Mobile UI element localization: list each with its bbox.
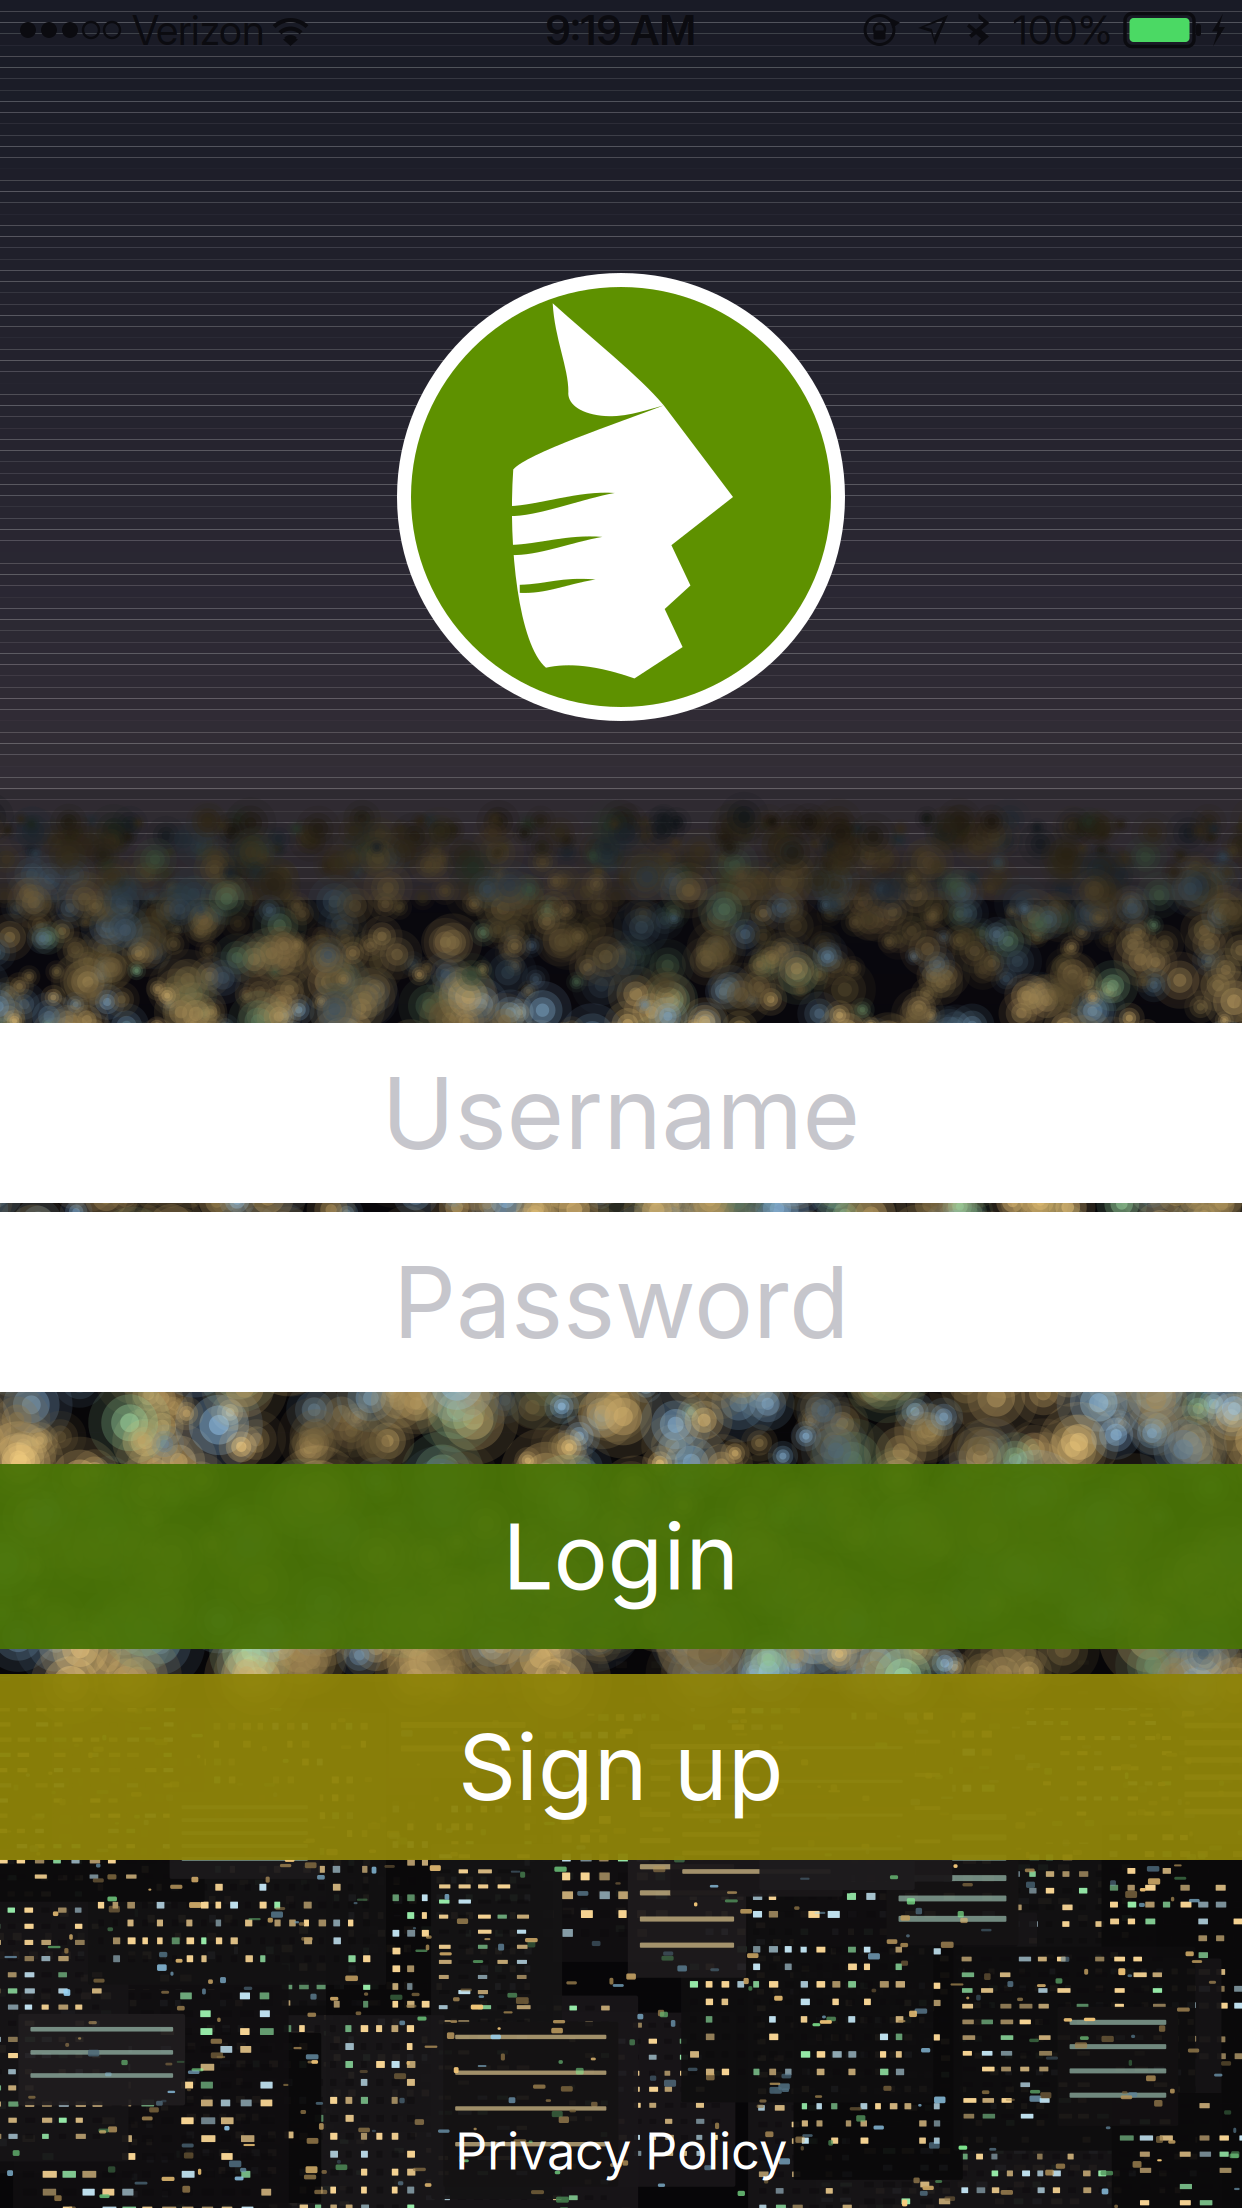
staticText: Login	[502, 1502, 739, 1611]
button[interactable]: Sign up	[0, 1674, 1242, 1860]
staticText: Password	[393, 1242, 849, 1362]
staticText: Username	[381, 1053, 860, 1173]
button[interactable]: Privacy Policy	[0, 2113, 1242, 2189]
staticText: Privacy Policy	[455, 2120, 787, 2182]
staticText: 100%	[1013, 6, 1112, 54]
staticText: Verizon	[132, 5, 265, 55]
staticText: 9:19 AM	[545, 5, 696, 55]
staticText: Sign up	[458, 1712, 784, 1822]
button[interactable]: Login	[0, 1464, 1242, 1649]
